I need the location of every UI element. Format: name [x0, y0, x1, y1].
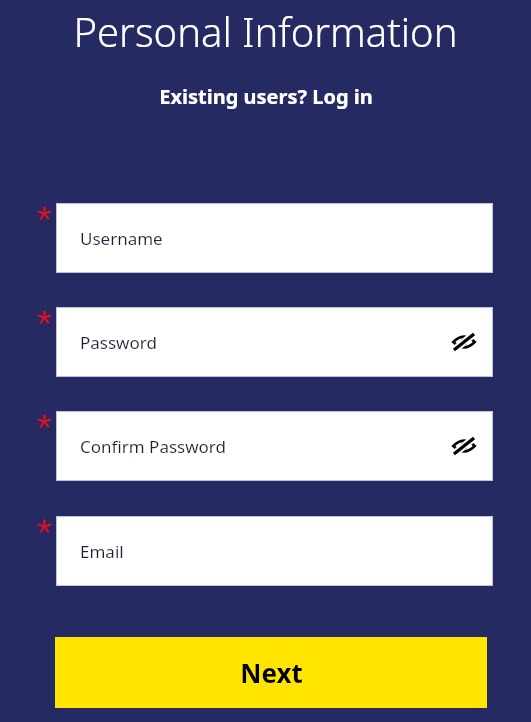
- button[interactable]: Next: [55, 637, 487, 708]
- staticText: Existing users? Log in: [159, 83, 373, 110]
- staticText: Confirm Password: [80, 435, 226, 458]
- button[interactable]: Toggle password visibility: [442, 320, 486, 364]
- staticText: Password: [80, 331, 157, 354]
- staticText: Username: [80, 227, 163, 250]
- button[interactable]: Username: [56, 203, 493, 273]
- button[interactable]: Toggle password visibility: [442, 424, 486, 468]
- button[interactable]: Existing users? Log in: [151, 80, 381, 113]
- button[interactable]: Confirm Password: [56, 411, 493, 481]
- staticText: Email: [80, 540, 124, 563]
- staticText: Next: [240, 655, 303, 690]
- staticText: Personal Information: [0, 4, 531, 58]
- button[interactable]: Password: [56, 307, 493, 377]
- button[interactable]: Email: [56, 516, 493, 586]
